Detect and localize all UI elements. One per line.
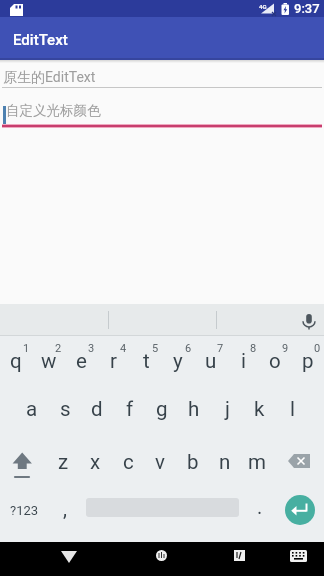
button[interactable] — [211, 388, 243, 438]
staticText: 5 — [152, 342, 159, 355]
staticText: l — [290, 397, 295, 421]
staticText: t — [143, 349, 150, 373]
staticText: i — [241, 349, 246, 373]
staticText: x — [90, 450, 101, 474]
staticText: q — [10, 349, 22, 373]
staticText: 4G — [259, 3, 267, 10]
staticText: o — [269, 349, 281, 373]
staticText: a — [26, 397, 38, 421]
staticText: p — [302, 349, 314, 373]
staticText: v — [155, 450, 165, 474]
button[interactable] — [275, 388, 307, 438]
button[interactable] — [81, 388, 113, 438]
staticText: s — [60, 397, 71, 421]
staticText: . — [257, 495, 263, 518]
button[interactable] — [162, 337, 194, 387]
staticText: g — [156, 397, 168, 421]
button[interactable] — [146, 438, 178, 488]
staticText: 自定义光标颜色 — [6, 102, 101, 119]
staticText: , — [63, 497, 67, 520]
button[interactable] — [178, 438, 210, 488]
staticText: j — [225, 397, 230, 421]
staticText: 原生的EditText — [3, 69, 96, 87]
staticText: EditText — [13, 31, 68, 49]
button[interactable] — [65, 337, 97, 387]
button[interactable] — [178, 388, 210, 438]
staticText: 6 — [185, 342, 192, 355]
button[interactable] — [49, 438, 81, 488]
staticText: r — [110, 349, 117, 373]
staticText: c — [123, 450, 134, 474]
button[interactable] — [0, 490, 48, 542]
button[interactable] — [0, 438, 48, 488]
button[interactable] — [113, 388, 145, 438]
staticText: 4 — [120, 342, 127, 355]
button[interactable] — [243, 388, 275, 438]
staticText: u — [205, 349, 217, 373]
button[interactable] — [282, 545, 316, 571]
button[interactable] — [49, 490, 81, 542]
button[interactable] — [81, 438, 113, 488]
button[interactable] — [16, 388, 48, 438]
button[interactable] — [81, 490, 243, 542]
button[interactable] — [292, 337, 324, 387]
staticText: 8 — [250, 342, 257, 355]
staticText: f — [126, 397, 134, 421]
staticText: h — [188, 397, 200, 421]
button[interactable] — [0, 95, 324, 128]
staticText: z — [58, 450, 69, 474]
staticText: 2 — [55, 342, 62, 355]
button[interactable] — [0, 337, 32, 387]
staticText: w — [41, 349, 57, 373]
button[interactable] — [211, 438, 243, 488]
staticText: k — [254, 397, 265, 421]
staticText: 9 — [282, 342, 289, 355]
button[interactable] — [32, 337, 64, 387]
staticText: ?123 — [10, 503, 39, 518]
staticText: 9:37 — [294, 1, 320, 16]
staticText: y — [173, 349, 183, 373]
button[interactable] — [146, 388, 178, 438]
button[interactable] — [275, 490, 324, 542]
button[interactable] — [145, 545, 177, 571]
staticText: m — [248, 450, 266, 474]
button[interactable] — [113, 438, 145, 488]
button[interactable] — [97, 337, 129, 387]
staticText: d — [91, 397, 103, 421]
button[interactable] — [53, 545, 85, 571]
staticText: 3 — [88, 342, 95, 355]
staticText: 7 — [217, 342, 224, 355]
button[interactable] — [130, 337, 162, 387]
staticText: n — [219, 450, 231, 474]
staticText: 1 — [23, 342, 30, 355]
button[interactable] — [49, 388, 81, 438]
button[interactable] — [243, 438, 275, 488]
button[interactable] — [298, 309, 320, 333]
button[interactable] — [227, 337, 259, 387]
button[interactable] — [0, 63, 324, 92]
staticText: 0 — [314, 342, 321, 355]
staticText: b — [187, 450, 199, 474]
button[interactable] — [194, 337, 226, 387]
button[interactable] — [243, 490, 275, 542]
staticText: e — [76, 349, 87, 373]
button[interactable] — [224, 545, 256, 571]
button[interactable] — [259, 337, 291, 387]
button[interactable] — [276, 438, 324, 488]
